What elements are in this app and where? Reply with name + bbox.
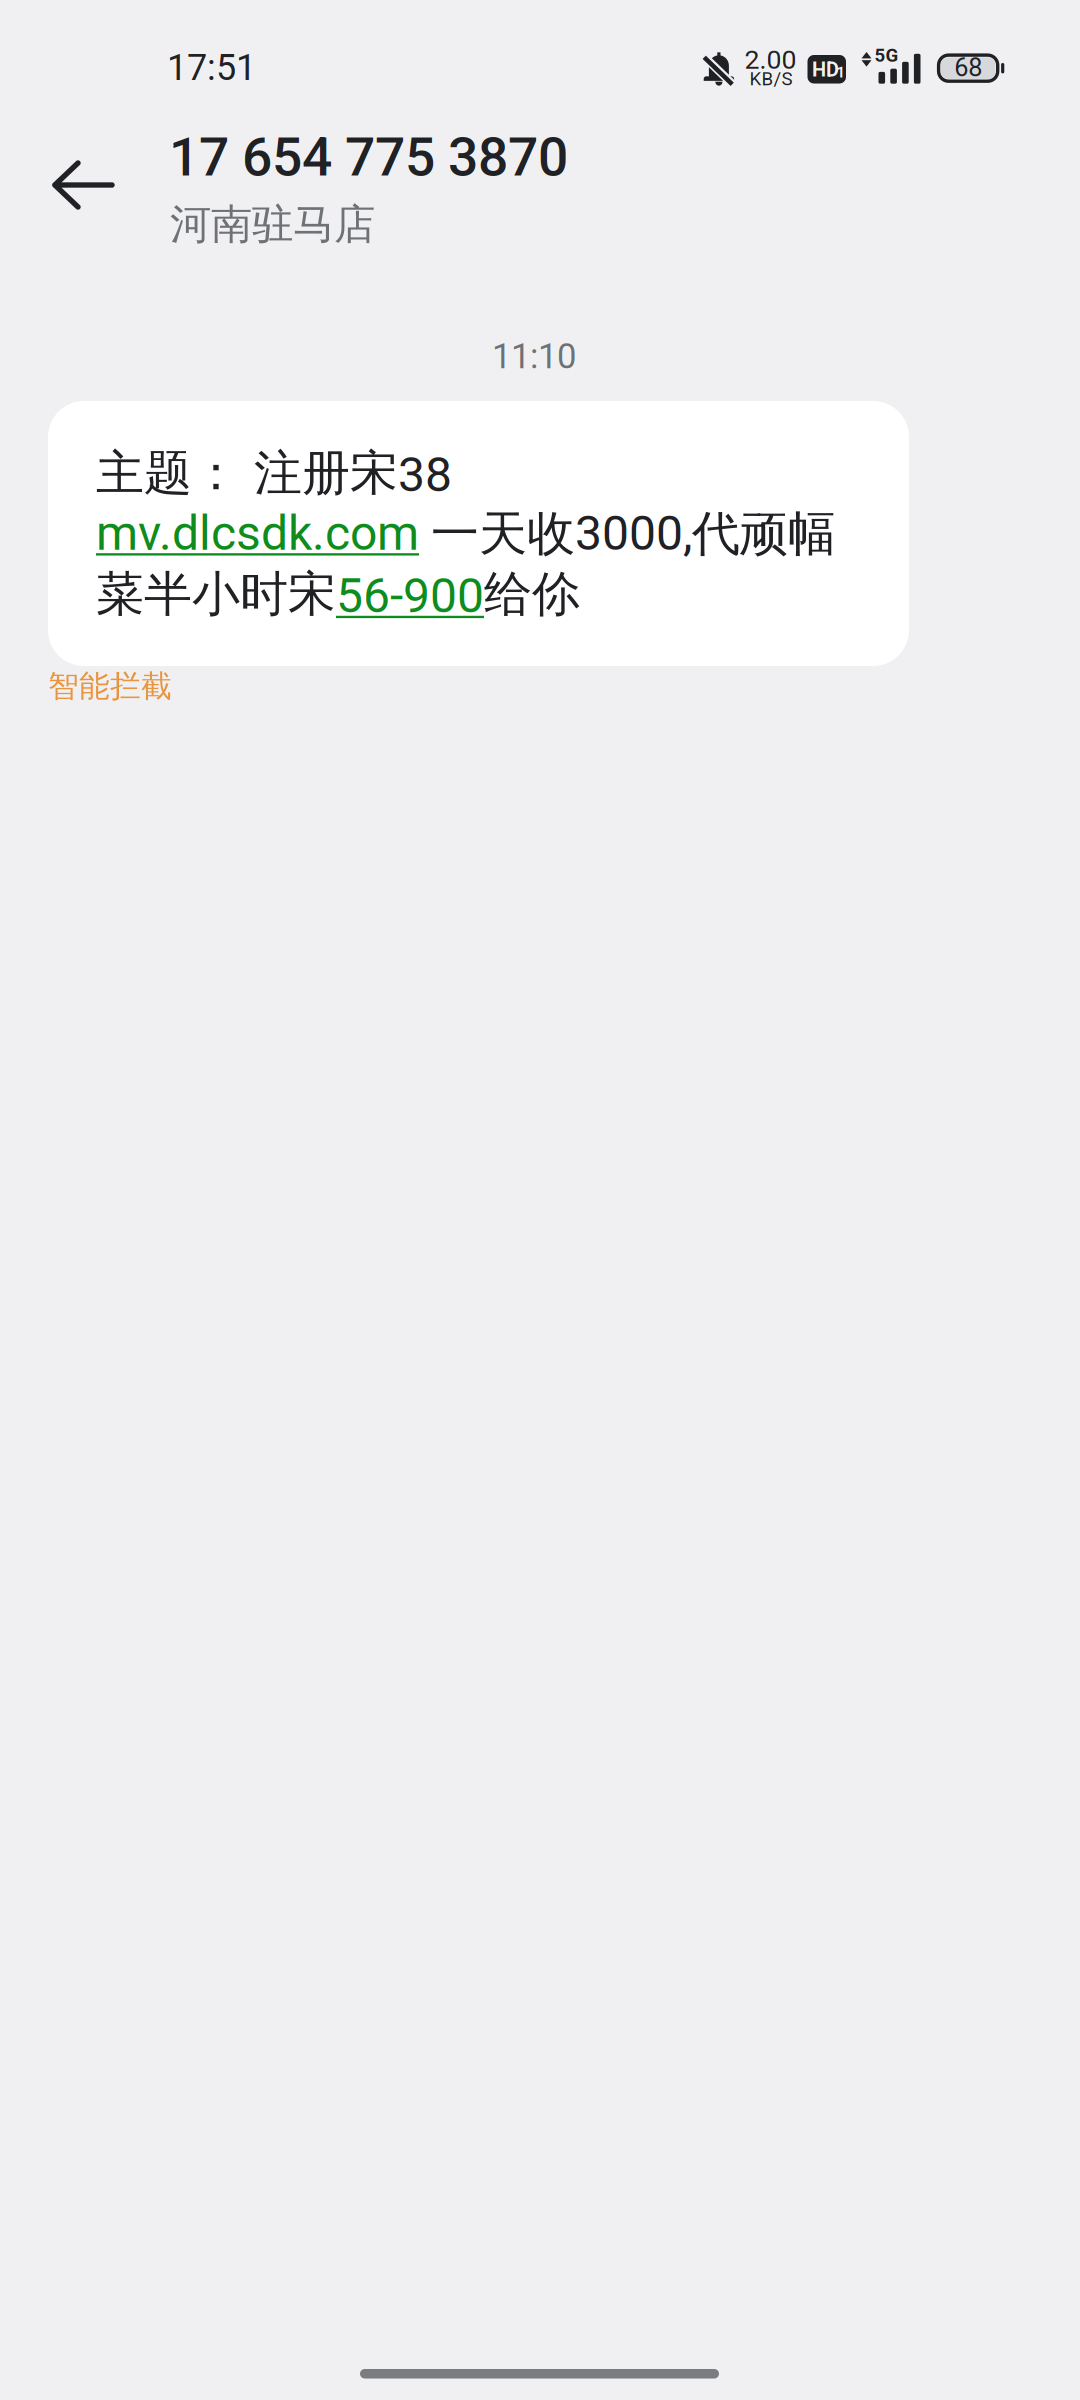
- button[interactable]: Back: [28, 130, 138, 240]
- staticText: 1: [836, 64, 844, 81]
- staticText: 17:51: [167, 46, 256, 89]
- button[interactable]: 智能拦截: [48, 667, 172, 706]
- staticText: 智能拦截: [48, 667, 172, 706]
- staticText: 5G: [874, 44, 898, 66]
- staticText: HD: [812, 58, 839, 81]
- staticText: 河南驻马店: [170, 198, 375, 251]
- staticText: 主题： 注册宋38 mv.dlcsdk.com 一天收3000,代顽幅 菜半小时…: [96, 443, 836, 624]
- staticText: 11:10: [492, 336, 576, 377]
- staticText: 17 654 775 3870: [169, 126, 568, 188]
- button[interactable]: 主题： 注册宋38 mv.dlcsdk.com 一天收3000,代顽幅 菜半小时…: [48, 401, 909, 666]
- staticText: KB/S: [749, 68, 792, 90]
- staticText: 68: [954, 53, 982, 82]
- button[interactable]: 17 654 775 3870: [169, 126, 589, 241]
- staticText: 2.00: [744, 44, 796, 75]
